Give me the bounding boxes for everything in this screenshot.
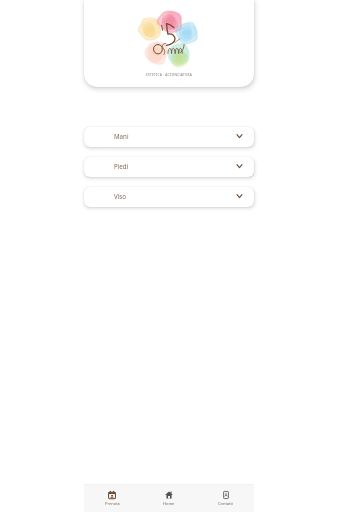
staticText: Home [163, 501, 175, 505]
button[interactable]: Contatti [197, 485, 254, 512]
staticText: Prenota [105, 501, 120, 505]
button[interactable]: Piedi [84, 157, 254, 177]
button[interactable]: 5 Sensi - Estetica Acconciatura [84, 0, 254, 87]
staticText: Piedi [114, 162, 129, 170]
button[interactable]: Home [140, 485, 197, 512]
button[interactable]: Viso [84, 187, 254, 207]
button[interactable]: Mani [84, 127, 254, 147]
button[interactable]: Prenota [84, 485, 140, 512]
staticText: Viso [114, 192, 127, 200]
staticText: ESTETICA · ACCONCIATURA [146, 73, 193, 77]
staticText: Mani [114, 132, 129, 140]
staticText: Contatti [218, 501, 234, 505]
